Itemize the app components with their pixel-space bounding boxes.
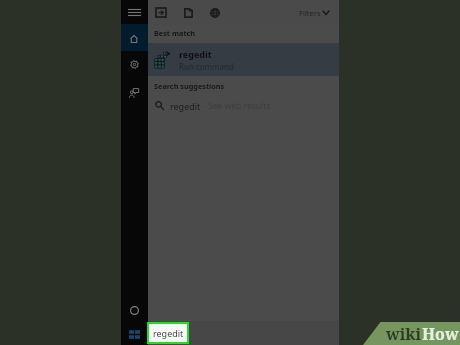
- button[interactable]: Home: [124, 31, 144, 47]
- button[interactable]: regedit: [149, 324, 187, 342]
- button[interactable]: Feedback: [124, 84, 144, 101]
- staticText: regedit: [179, 48, 212, 60]
- button[interactable]: Filters: [295, 3, 335, 22]
- staticText: How: [422, 323, 459, 345]
- staticText: - See web results: [201, 100, 271, 112]
- button[interactable]: Menu: [128, 9, 141, 16]
- button[interactable]: Start: [124, 324, 144, 345]
- staticText: Filters: [299, 8, 321, 18]
- button[interactable]: Cortana: [126, 302, 142, 318]
- staticText: Best match: [154, 28, 196, 38]
- staticText: wiki: [386, 323, 422, 345]
- staticText: regedit: [153, 327, 184, 339]
- staticText: Run command: [179, 61, 234, 72]
- button[interactable]: Settings: [124, 56, 144, 73]
- button[interactable]: regedit: [148, 43, 339, 76]
- staticText: Search suggestions: [154, 81, 225, 91]
- button[interactable]: Documents: [177, 1, 199, 24]
- button[interactable]: regedit: [148, 96, 339, 115]
- button[interactable]: Web: [204, 1, 226, 24]
- button[interactable]: Apps: [150, 1, 172, 24]
- staticText: regedit: [170, 100, 201, 112]
